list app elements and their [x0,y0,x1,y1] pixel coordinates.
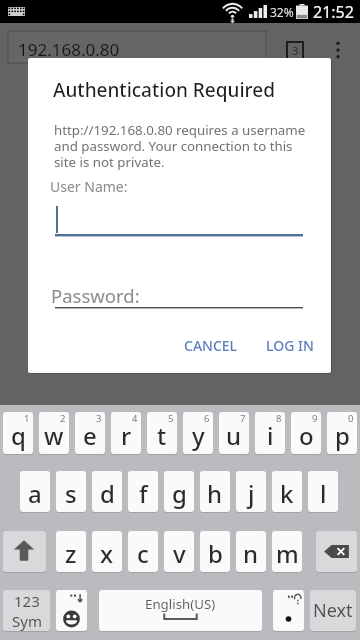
button[interactable]: Symbols [3,590,50,631]
button[interactable]: v [164,531,194,572]
staticText: Authentication Required [53,77,275,103]
button[interactable]: e [75,412,105,454]
button[interactable]: h [200,471,230,512]
staticText: j [248,477,255,510]
staticText: f [139,477,148,510]
button[interactable]: Backspace [316,531,357,572]
staticText: 123 [14,591,40,611]
button[interactable]: 192.168.0.80 [8,31,266,63]
staticText: r [121,419,132,452]
staticText: 32% [270,4,294,20]
staticText: Sym [12,611,42,631]
staticText: b [208,537,223,570]
button[interactable]: m [272,531,302,572]
staticText: l [320,477,327,510]
button[interactable]: g [164,471,194,512]
button[interactable]: p [327,412,357,454]
button[interactable]: x [92,531,122,572]
button[interactable]: Tabs [287,42,303,59]
button[interactable]: b [200,531,230,572]
button[interactable]: o [291,412,321,454]
staticText: h [207,477,223,510]
staticText: 3 [96,412,102,425]
button[interactable]: LOG IN [261,330,318,360]
staticText: z [65,537,77,570]
staticText: LOG IN [266,336,314,355]
staticText: s [65,477,77,510]
button[interactable]: w [39,412,69,454]
button[interactable]: c [128,531,158,572]
staticText: c [137,537,149,570]
staticText: 8 [276,412,282,425]
staticText: p [335,419,350,452]
staticText: q [11,419,26,452]
button[interactable]: s [56,471,86,512]
staticText: 0 [348,412,354,425]
staticText: 5 [168,412,174,425]
staticText: 3 [292,43,299,58]
button[interactable]: f [128,471,158,512]
staticText: a [28,477,42,510]
button[interactable]: Period [273,590,304,631]
staticText: x [100,537,114,570]
button[interactable]: y [183,412,213,454]
staticText: i [267,419,274,452]
staticText: v [173,537,186,570]
staticText: http://192.168.0.80 requires a username … [54,121,307,171]
staticText: Password: [51,283,140,308]
button[interactable]: Space [99,590,262,631]
staticText: 21:52 [313,1,354,23]
staticText: u [226,419,242,452]
staticText: English(US) [145,595,216,613]
staticText: n [243,537,259,570]
staticText: w [44,419,64,452]
staticText: e [83,419,97,452]
button[interactable]: Next [310,590,356,631]
button[interactable]: l [308,471,338,512]
button[interactable]: Shift [3,531,46,572]
staticText: y [192,419,205,452]
staticText: d [100,477,115,510]
staticText: 2 [60,412,66,425]
staticText: 1 [24,412,30,425]
staticText: 9 [312,412,318,425]
button[interactable]: i [255,412,285,454]
staticText: t [157,419,167,452]
button[interactable]: n [236,531,266,572]
staticText: Next [313,598,353,623]
button[interactable]: k [272,471,302,512]
button[interactable]: t [147,412,177,454]
button[interactable]: u [219,412,249,454]
staticText: CANCEL [184,336,238,355]
staticText: User Name: [50,177,128,196]
button[interactable]: q [3,412,33,454]
staticText: 192.168.0.80 [18,38,120,61]
button[interactable]: d [92,471,122,512]
staticText: o [299,419,314,452]
staticText: m [276,537,299,570]
button[interactable]: r [111,412,141,454]
button[interactable]: CANCEL [180,330,242,360]
button[interactable]: Emoji [56,590,87,631]
button[interactable]: z [56,531,86,572]
staticText: g [172,477,187,510]
staticText: 7 [240,412,246,425]
staticText: 4 [132,412,138,425]
staticText: 6 [204,412,210,425]
button[interactable]: a [20,471,50,512]
button[interactable]: More options [330,38,346,62]
button[interactable]: j [236,471,266,512]
staticText: k [280,477,294,510]
